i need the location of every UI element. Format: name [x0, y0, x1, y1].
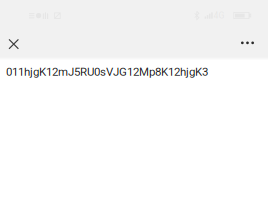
button[interactable]: Close	[0, 23, 37, 57]
button[interactable]: More options	[226, 22, 268, 58]
staticText: 011hjgK12mJ5RU0sVJG12Mp8K12hjgK3	[6, 65, 208, 78]
